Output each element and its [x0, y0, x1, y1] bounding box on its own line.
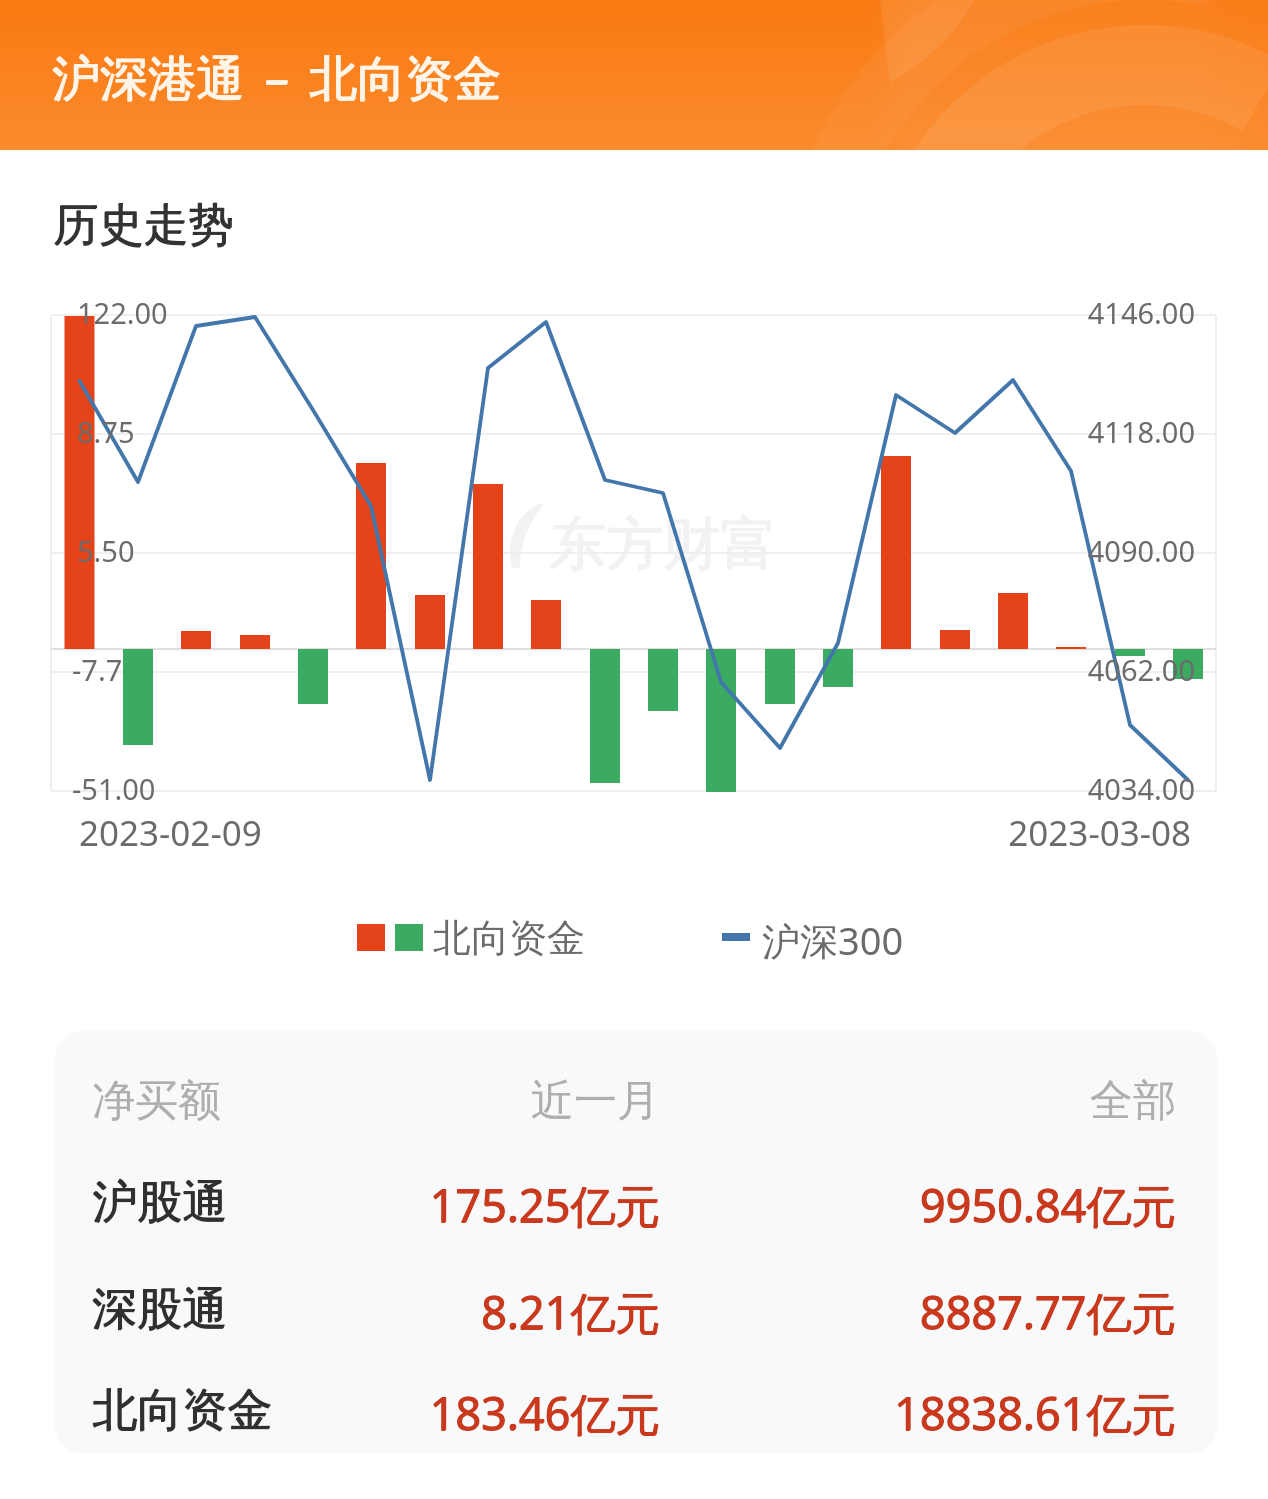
staticText: 北向资金 [92, 1382, 272, 1439]
staticText: 北向资金 [93, 1382, 273, 1439]
staticText: 183.46亿元 [161, 1382, 661, 1443]
staticText: 18838.61亿元 [676, 1383, 1176, 1444]
staticText: 9950.84亿元 [676, 1175, 1176, 1236]
staticText: 2023-03-08 [591, 809, 1191, 857]
staticText: 8.21亿元 [160, 1282, 660, 1343]
staticText: 净买额 [92, 1074, 221, 1128]
staticText: 8887.77亿元 [676, 1282, 1176, 1343]
button[interactable]: 北向资金 [55, 1378, 1217, 1453]
staticText: 沪深港通 – 北向资金 [53, 44, 502, 110]
staticText: 183.46亿元 [160, 1383, 660, 1444]
staticText: 历史走势 [53, 198, 233, 255]
staticText: 18838.61亿元 [677, 1382, 1177, 1443]
staticText: 4062.00 [595, 650, 1195, 689]
button[interactable]: 北向资金 [355, 912, 595, 960]
staticText: -51.00 [72, 769, 156, 808]
staticText: 18838.61亿元 [676, 1382, 1176, 1443]
staticText: 8.21亿元 [161, 1281, 661, 1342]
staticText: 9950.84亿元 [676, 1174, 1176, 1235]
staticText: 北向资金 [433, 914, 585, 962]
staticText: 4090.00 [595, 531, 1195, 570]
staticText: 历史走势 [54, 197, 234, 254]
staticText: 175.25亿元 [160, 1174, 660, 1235]
staticText: 东方财富 [549, 508, 777, 580]
staticText: 深股通 [92, 1282, 227, 1339]
staticText: 8.75 [77, 412, 135, 451]
staticText: 东方财富 [550, 508, 778, 580]
staticText: 沪深港通 – 北向资金 [52, 45, 501, 111]
staticText: -7.7 [72, 650, 123, 689]
button[interactable]: 沪深港通 北向资金 标题栏 [0, 0, 1268, 150]
staticText: 历史走势 [53, 197, 233, 254]
staticText: 9950.84亿元 [677, 1174, 1177, 1235]
staticText: 175.25亿元 [160, 1175, 660, 1236]
staticText: 2023-02-09 [79, 809, 262, 857]
button[interactable]: 深股通 [55, 1277, 1217, 1377]
staticText: 东方财富 [549, 509, 777, 581]
staticText: 183.46亿元 [160, 1382, 660, 1443]
staticText: 沪股通 [92, 1175, 227, 1232]
staticText: 8887.77亿元 [676, 1281, 1176, 1342]
staticText: 沪股通 [93, 1174, 228, 1231]
staticText: 沪股通 [92, 1174, 227, 1231]
staticText: 122.00 [77, 293, 168, 332]
staticText: 8887.77亿元 [677, 1281, 1177, 1342]
staticText: 沪深港通 – 北向资金 [52, 44, 501, 110]
staticText: 4146.00 [595, 293, 1195, 332]
staticText: 8.21亿元 [160, 1281, 660, 1342]
staticText: 北向资金 [92, 1383, 272, 1440]
staticText: 5.50 [77, 531, 135, 570]
button[interactable]: 沪股通 [55, 1170, 1217, 1270]
staticText: 深股通 [93, 1281, 228, 1338]
staticText: 4034.00 [595, 769, 1195, 808]
staticText: 深股通 [92, 1281, 227, 1338]
staticText: 沪深300 [762, 914, 904, 962]
button[interactable]: 沪深300 [720, 912, 910, 960]
staticText: 全部 [776, 1074, 1176, 1128]
staticText: 近一月 [260, 1074, 660, 1128]
staticText: 175.25亿元 [161, 1174, 661, 1235]
staticText: 4118.00 [595, 412, 1195, 451]
